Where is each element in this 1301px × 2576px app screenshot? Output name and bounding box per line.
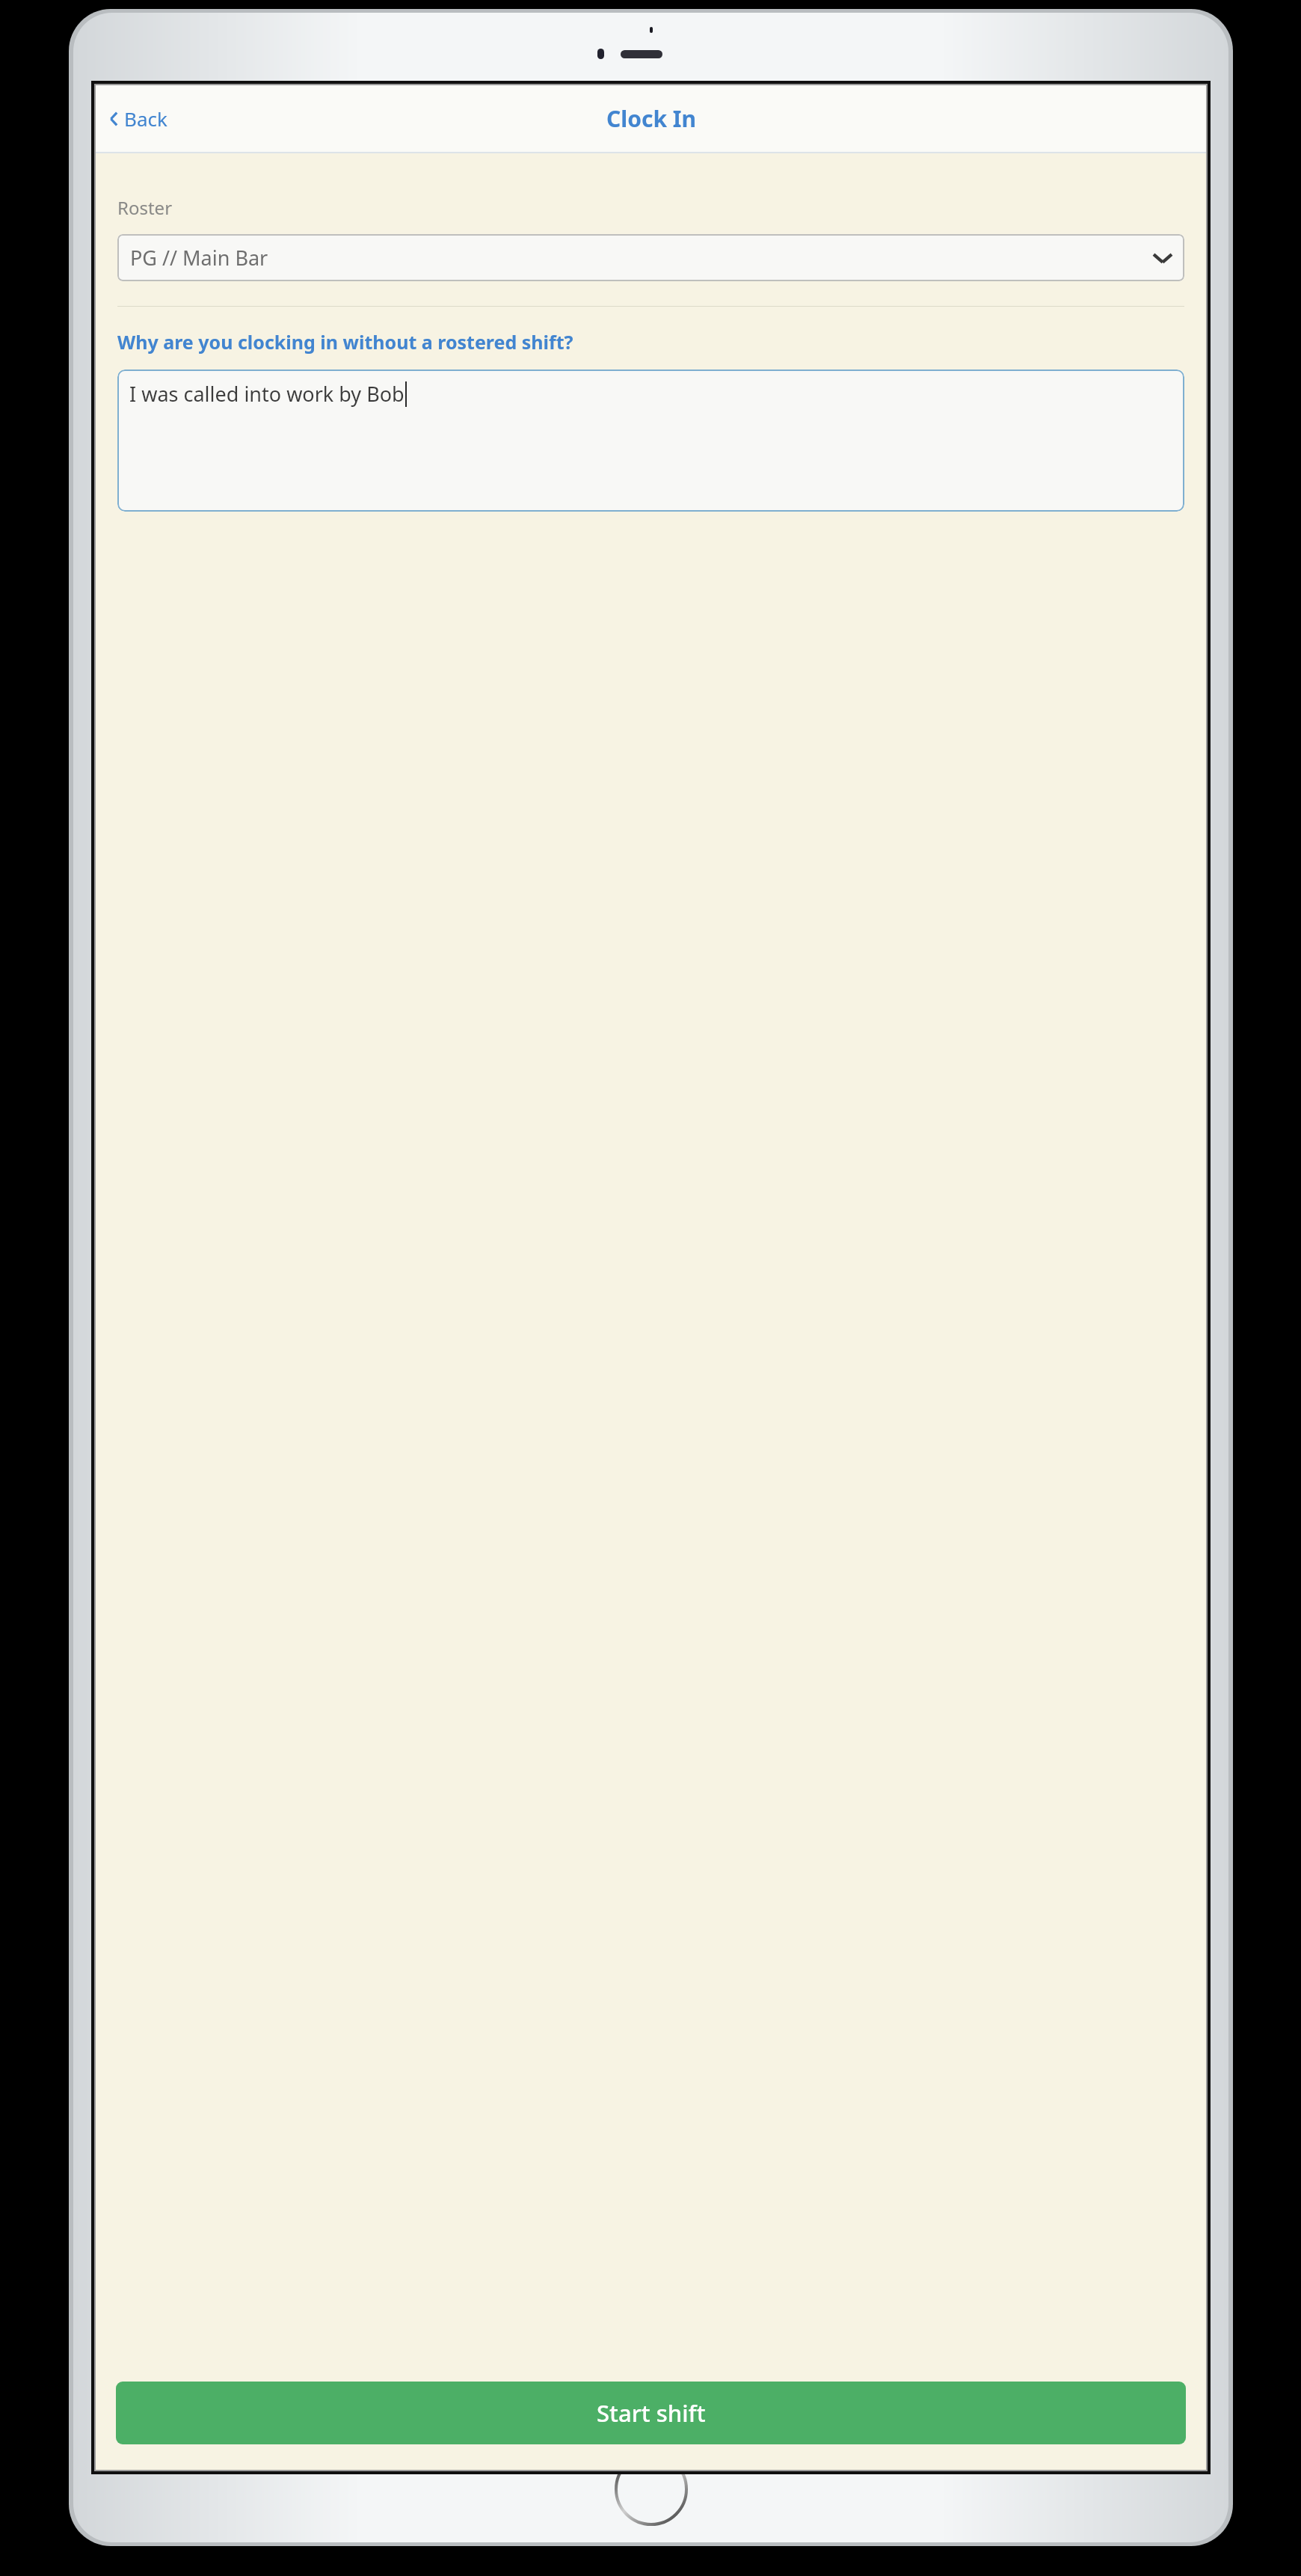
button[interactable]: I was called into work by Bob <box>117 369 1184 512</box>
staticText: Why are you clocking in without a roster… <box>117 329 573 355</box>
staticText: PG // Main Bar <box>130 244 268 272</box>
staticText: Back <box>124 105 167 132</box>
button[interactable]: Back <box>102 99 175 138</box>
staticText: Roster <box>117 195 173 220</box>
button[interactable]: Start shift <box>116 2382 1186 2444</box>
staticText: Clock In <box>606 103 696 134</box>
button[interactable]: PG // Main Bar <box>117 234 1184 281</box>
staticText: Start shift <box>597 2397 706 2429</box>
staticText: I was called into work by Bob <box>129 380 405 408</box>
